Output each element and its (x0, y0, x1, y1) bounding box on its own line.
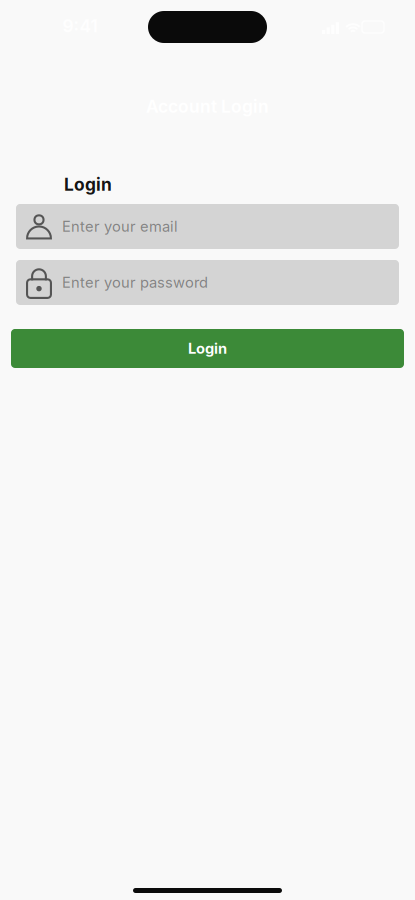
staticText: Login (64, 174, 112, 195)
staticText: Enter your email (62, 218, 178, 235)
staticText: Enter your password (62, 274, 208, 291)
button[interactable]: Enter your email (16, 204, 399, 249)
button[interactable]: Login (11, 329, 404, 368)
button[interactable]: Enter your password (16, 260, 399, 305)
staticText: Login (188, 340, 227, 357)
